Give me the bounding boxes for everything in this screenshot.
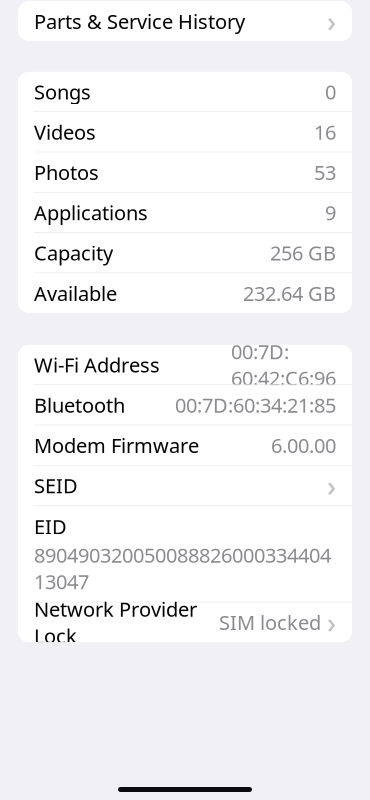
button[interactable]: EID [18, 506, 352, 602]
staticText: Songs [34, 78, 91, 105]
staticText: Applications [34, 199, 148, 226]
button[interactable]: Photos [18, 152, 352, 192]
button[interactable]: SEID [18, 466, 352, 505]
button[interactable]: Songs [18, 72, 352, 111]
staticText: 00:7D:60:34:21:85 [175, 392, 336, 418]
button[interactable]: Capacity [18, 233, 352, 273]
button[interactable]: Videos [18, 112, 352, 152]
staticText: Photos [34, 159, 99, 186]
staticText: 53 [314, 159, 336, 186]
staticText: Network Provider Lock [34, 596, 197, 649]
staticText: Modem Firmware [34, 432, 199, 459]
staticText: › [327, 467, 336, 504]
button[interactable]: Modem Firmware [18, 425, 352, 465]
staticText: 00:7D:60:42:C6:96 [231, 338, 336, 391]
button[interactable]: Applications [18, 193, 352, 232]
button[interactable]: Network Provider Lock [18, 603, 352, 642]
staticText: 6.00.00 [271, 432, 336, 459]
button[interactable]: Bluetooth [18, 385, 352, 425]
staticText: › [327, 604, 336, 641]
button[interactable]: Available [18, 273, 352, 313]
staticText: Parts & Service History [34, 8, 245, 34]
staticText: 89049032005008882600033440413047 [34, 542, 331, 595]
staticText: Wi-Fi Address [34, 351, 160, 378]
staticText: 16 [314, 119, 336, 145]
staticText: SEID [34, 472, 78, 499]
button[interactable]: Wi-Fi Address [18, 345, 352, 384]
staticText: 9 [325, 199, 336, 226]
staticText: Available [34, 280, 117, 306]
staticText: Bluetooth [34, 392, 125, 418]
staticText: Capacity [34, 240, 113, 266]
staticText: › [327, 3, 336, 40]
staticText: 232.64 GB [243, 280, 336, 306]
staticText: 256 GB [270, 240, 336, 266]
staticText: Videos [34, 119, 96, 145]
staticText: SIM locked [219, 609, 321, 636]
staticText: EID [34, 513, 67, 540]
staticText: 0 [325, 78, 336, 105]
button[interactable]: Parts & Service History [18, 1, 352, 41]
